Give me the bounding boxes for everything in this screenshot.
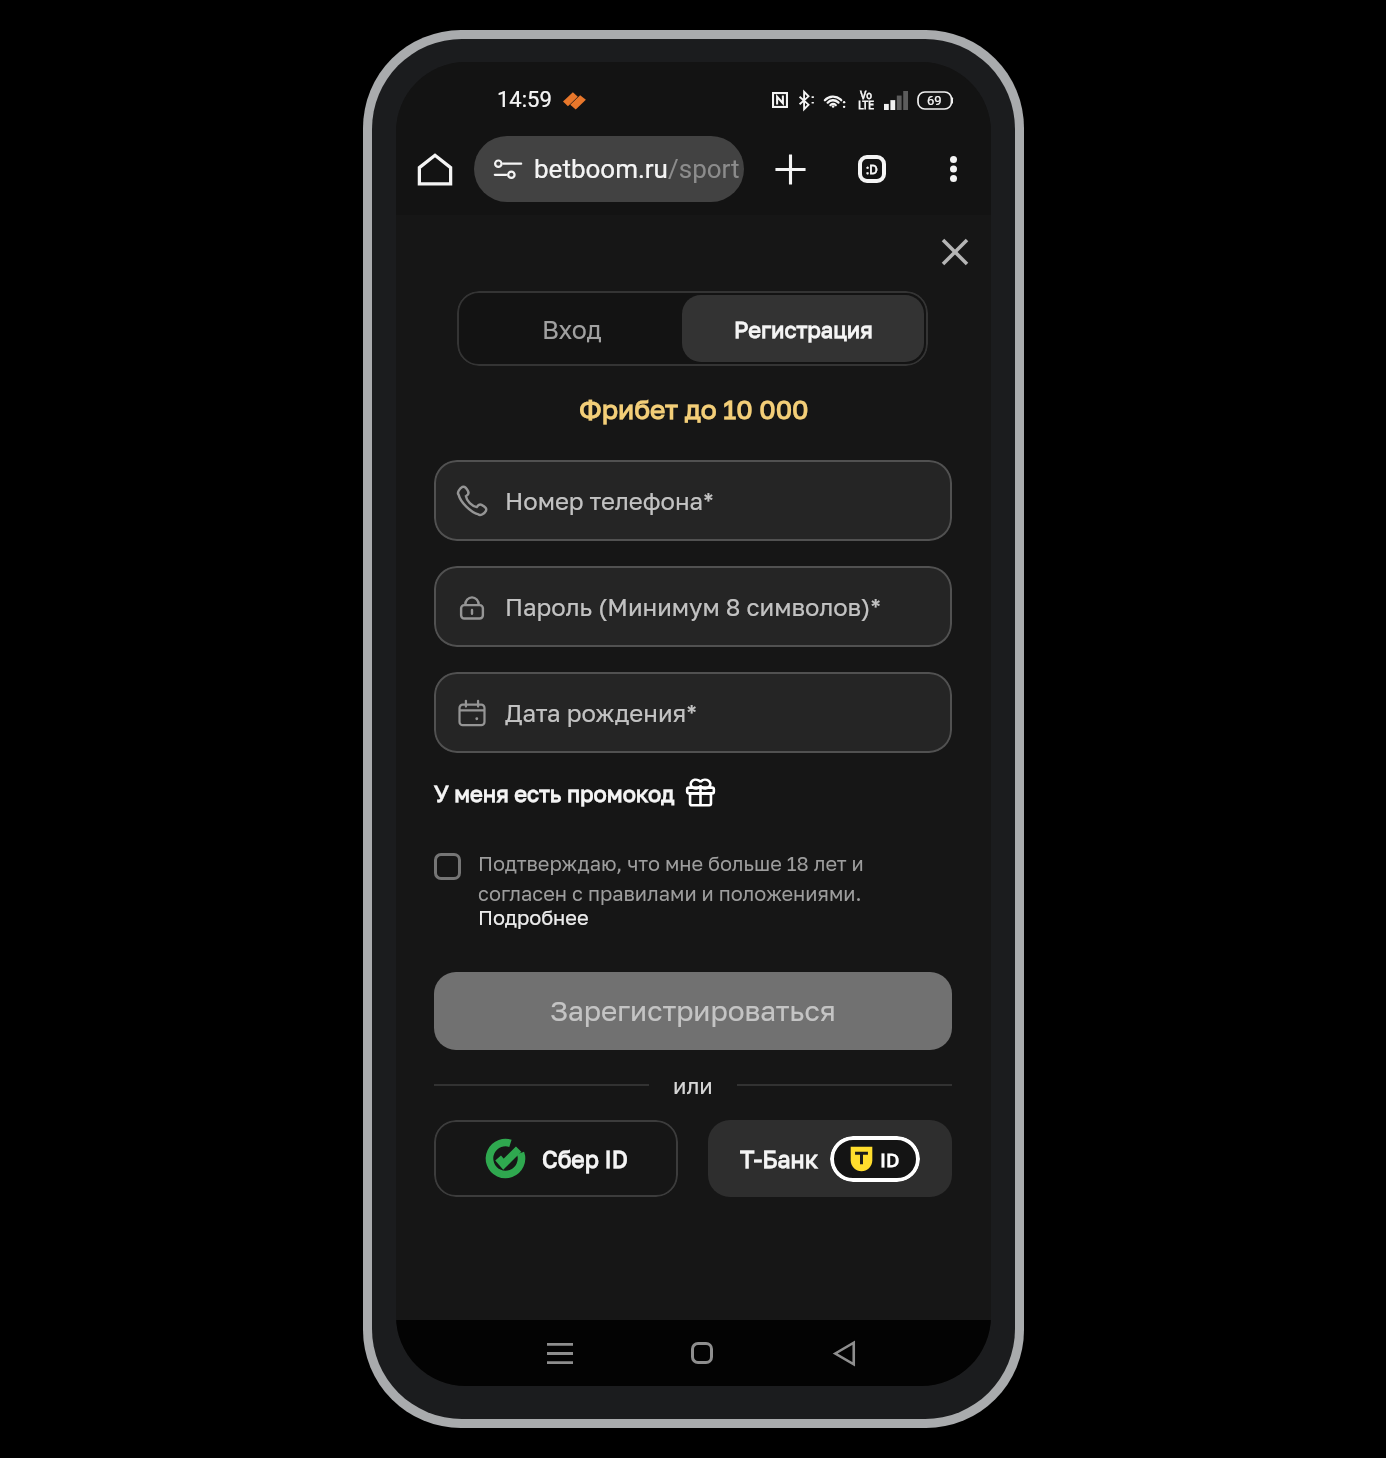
button[interactable]: Вход (461, 295, 682, 362)
staticText: У меня есть промокод (434, 780, 675, 806)
staticText: betboom.ru (534, 154, 668, 184)
staticText: 14:59 (497, 87, 552, 113)
button[interactable]: Подтверждаю, что мне больше 18 лет и сог… (434, 851, 952, 929)
button[interactable]: More options (929, 145, 977, 193)
button[interactable]: Сбер ID (434, 1120, 678, 1197)
button[interactable]: Back (809, 1320, 879, 1386)
button[interactable]: Home (406, 140, 464, 198)
staticText: Подтверждаю, что мне больше 18 лет и сог… (478, 851, 864, 905)
staticText: 69 (927, 93, 942, 108)
staticText: Т-Банк (740, 1145, 818, 1173)
staticText: ID (880, 1148, 900, 1171)
staticText: /sport (668, 154, 740, 184)
staticText: Регистрация (734, 316, 873, 342)
staticText: Фрибет до 10 000 (579, 393, 809, 425)
button[interactable]: Home (667, 1320, 737, 1386)
button[interactable]: Т-Банк (708, 1120, 952, 1197)
staticText: или (673, 1072, 713, 1098)
staticText: Сбер ID (542, 1145, 628, 1173)
button[interactable]: Recents (525, 1320, 595, 1386)
staticText: Номер телефона* (505, 486, 714, 515)
staticText: Vo LTE (858, 90, 874, 111)
button[interactable]: Пароль (Минимум 8 символов)* (434, 566, 952, 647)
button[interactable]: У меня есть промокод (434, 778, 715, 807)
staticText: Подробнее (478, 905, 589, 929)
button[interactable]: betboom.ru (474, 136, 744, 202)
staticText: Пароль (Минимум 8 символов)* (505, 592, 882, 621)
button[interactable]: Close (926, 223, 984, 281)
staticText: :D (866, 162, 878, 177)
staticText: Вход (542, 314, 602, 344)
button[interactable]: New tab (761, 140, 819, 198)
button[interactable]: Зарегистрироваться (434, 972, 952, 1050)
staticText: Зарегистрироваться (550, 994, 836, 1028)
staticText: Дата рождения* (505, 698, 697, 727)
button[interactable]: Регистрация (682, 295, 924, 362)
button[interactable]: Номер телефона* (434, 460, 952, 541)
button[interactable]: Tabs (843, 140, 901, 198)
button[interactable]: Дата рождения* (434, 672, 952, 753)
